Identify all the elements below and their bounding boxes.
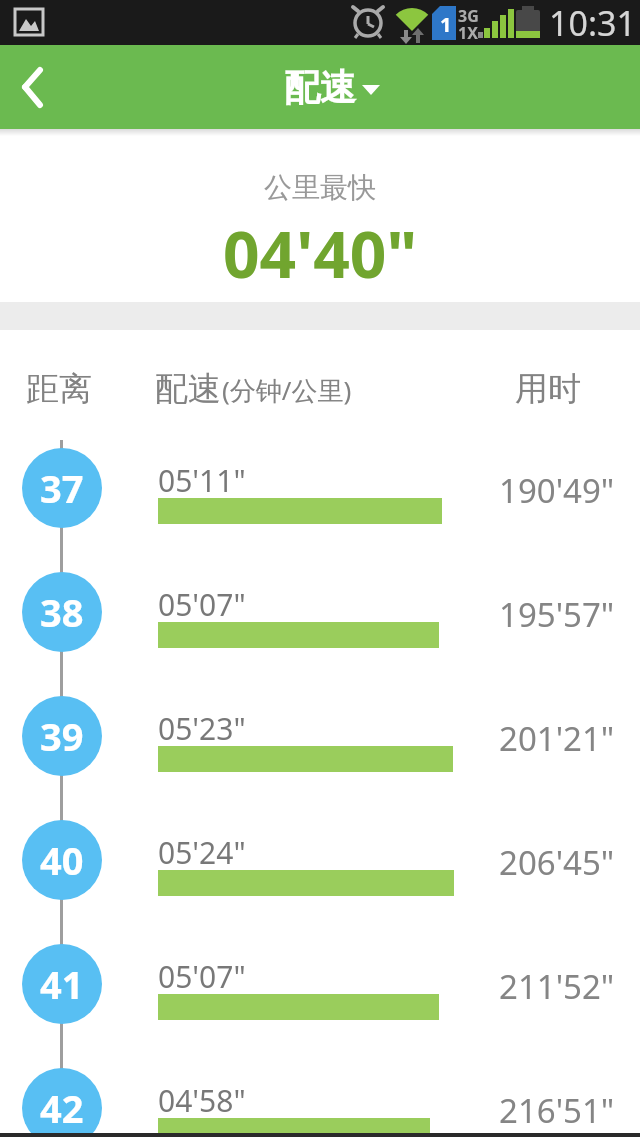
staticText: 配速 xyxy=(155,368,221,408)
staticText: 10:31 xyxy=(549,0,636,45)
staticText: 05'07" xyxy=(158,584,246,616)
button[interactable] xyxy=(0,922,640,1046)
staticText: 39 xyxy=(40,710,84,762)
staticText: 195'57" xyxy=(499,592,615,632)
button[interactable]: 38 xyxy=(22,572,102,652)
staticText: 05'07" xyxy=(158,956,246,988)
button[interactable] xyxy=(0,426,640,550)
staticText: 1X xyxy=(458,22,478,40)
button[interactable]: 40 xyxy=(22,820,102,900)
staticText: 05'23" xyxy=(158,708,246,740)
staticText: 38 xyxy=(40,586,84,638)
staticText: 配速 xyxy=(284,65,356,110)
staticText: 216'51" xyxy=(499,1088,615,1128)
staticText: 41 xyxy=(40,958,84,1010)
button[interactable]: 42 xyxy=(22,1068,102,1137)
staticText: 04'40" xyxy=(223,210,418,284)
staticText: 42 xyxy=(40,1082,84,1134)
staticText: 公里最快 xyxy=(264,170,376,204)
staticText: 3G xyxy=(458,5,479,23)
button[interactable]: 41 xyxy=(22,944,102,1024)
staticText: 201'21" xyxy=(499,716,615,756)
button[interactable] xyxy=(0,1046,640,1137)
staticText: 37 xyxy=(40,462,84,514)
staticText: 距离 xyxy=(26,368,92,408)
staticText: 206'45" xyxy=(499,840,615,880)
staticText: 04'58" xyxy=(158,1080,246,1112)
button[interactable] xyxy=(0,798,640,922)
staticText: 05'24" xyxy=(158,832,246,864)
button[interactable] xyxy=(250,45,390,129)
button[interactable]: 39 xyxy=(22,696,102,776)
button[interactable] xyxy=(0,45,70,129)
button[interactable]: 37 xyxy=(22,448,102,528)
staticText: 05'11" xyxy=(158,460,246,492)
staticText: 190'49" xyxy=(499,468,615,508)
staticText: (分钟/公里) xyxy=(222,372,352,408)
staticText: 1 xyxy=(440,11,452,38)
button[interactable] xyxy=(0,674,640,798)
staticText: 用时 xyxy=(515,368,581,408)
staticText: 40 xyxy=(40,834,84,886)
staticText: 211'52" xyxy=(499,964,615,1004)
button[interactable] xyxy=(0,550,640,674)
